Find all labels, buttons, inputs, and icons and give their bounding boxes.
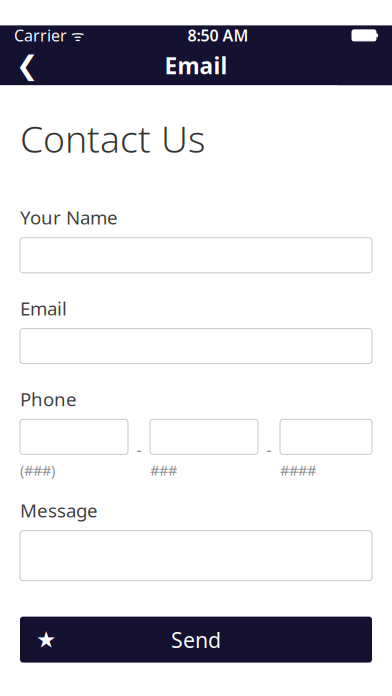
staticText: - xyxy=(266,439,271,460)
staticText: Contact Us xyxy=(20,113,206,163)
staticText: Phone xyxy=(20,386,77,411)
staticText: ᯤ xyxy=(67,26,84,45)
staticText: - xyxy=(136,439,141,460)
staticText: Email xyxy=(164,50,227,80)
staticText: Carrier xyxy=(14,25,67,46)
staticText: Your Name xyxy=(20,205,118,230)
staticText: 8:50 AM xyxy=(187,25,248,46)
staticText: #### xyxy=(280,460,316,480)
staticText: Message xyxy=(20,498,98,523)
staticText: Send xyxy=(171,625,221,654)
staticText: (###) xyxy=(20,460,55,480)
button[interactable]: ★ xyxy=(20,617,372,663)
staticText: ### xyxy=(150,460,177,480)
button[interactable]: Back xyxy=(0,45,54,85)
staticText: ★ xyxy=(36,627,56,652)
staticText: Email xyxy=(20,296,67,321)
staticText: ❮ xyxy=(16,50,38,81)
